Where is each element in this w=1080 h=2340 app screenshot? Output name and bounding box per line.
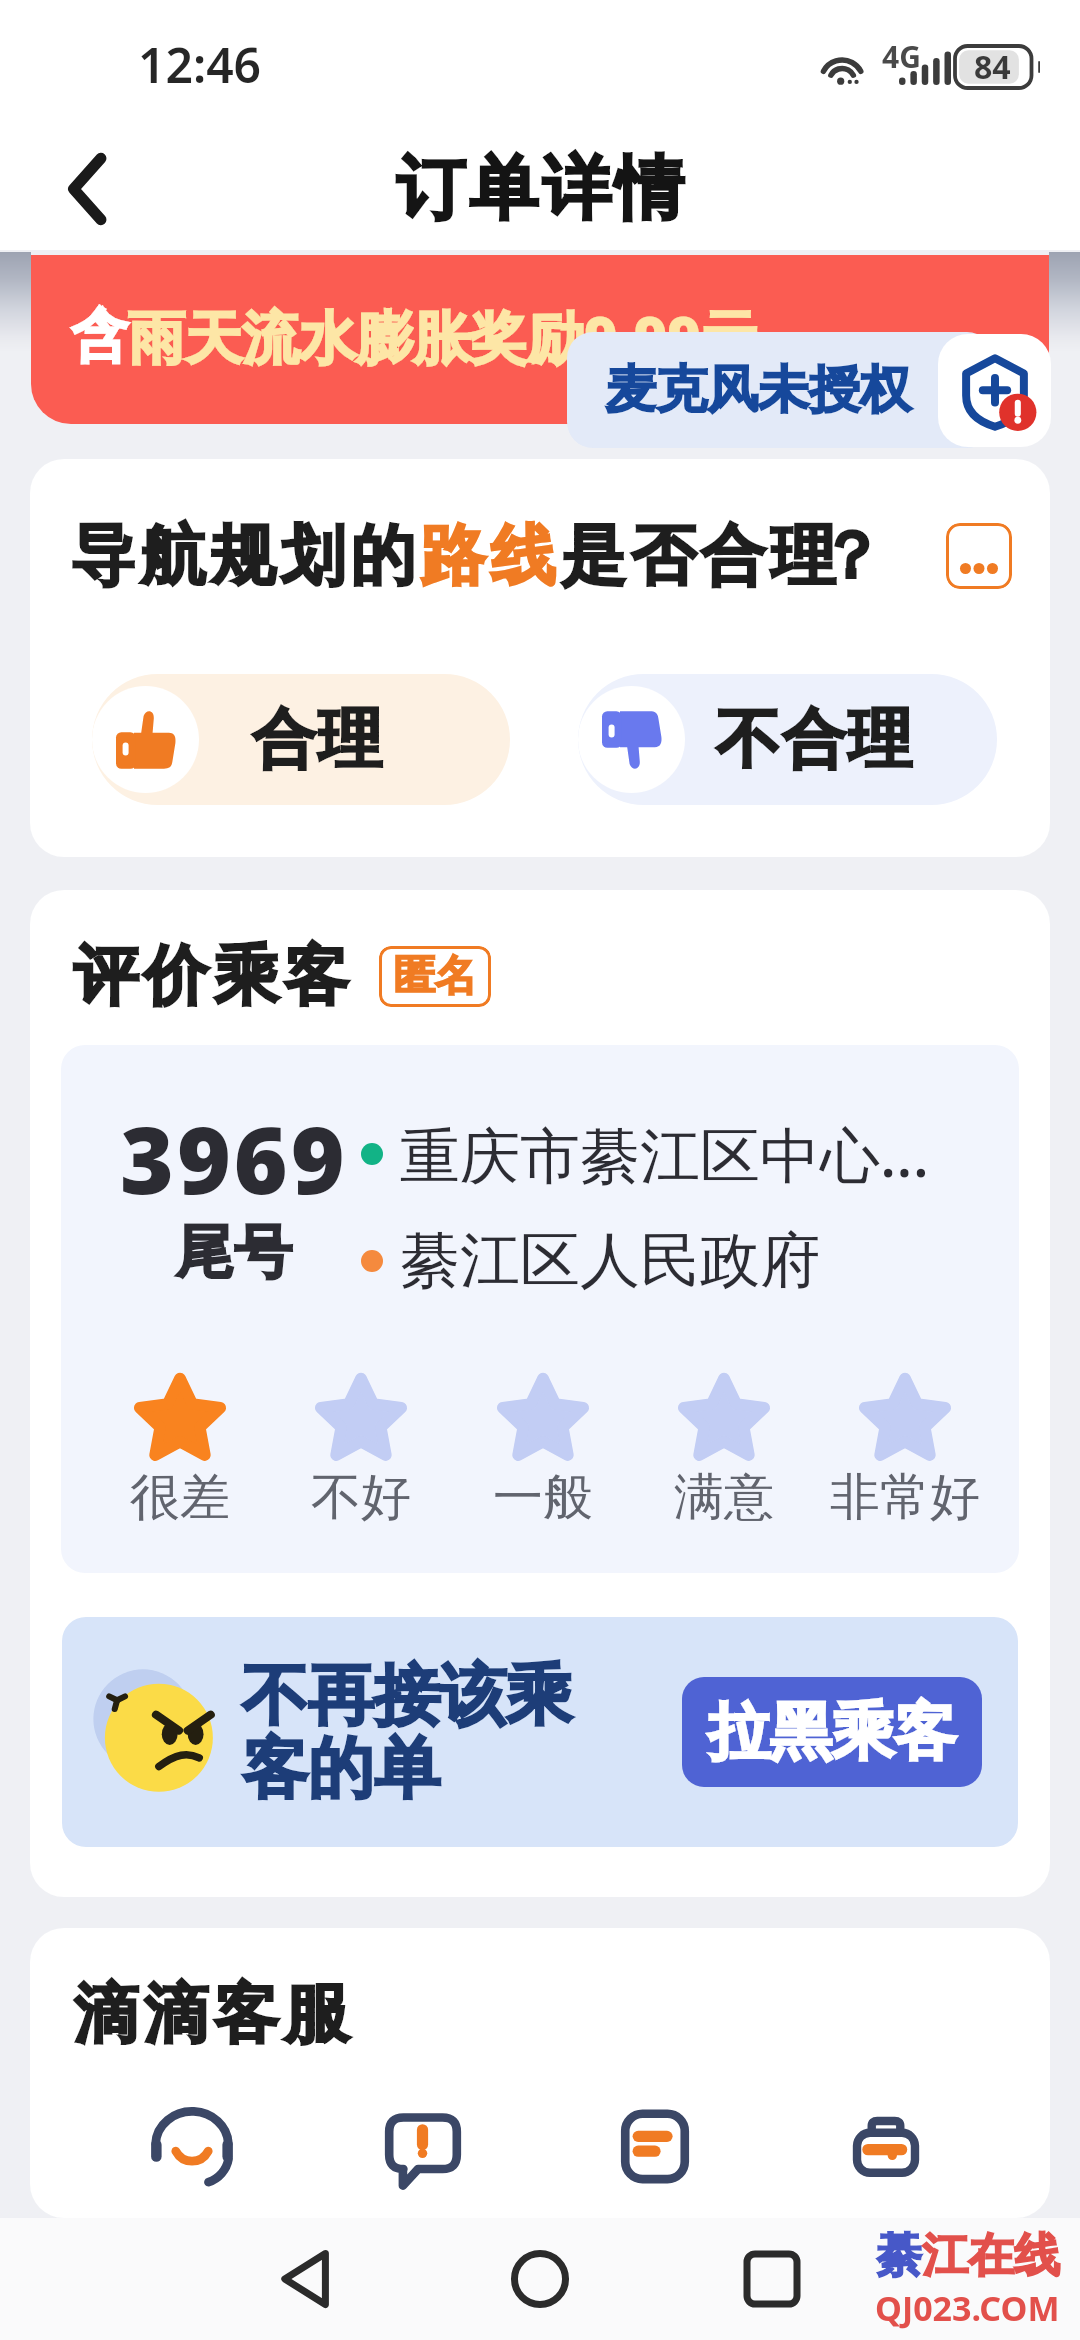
button[interactable]: Report a problem: [361, 2083, 485, 2207]
staticText: 订单详情: [394, 146, 686, 233]
staticText: 路线: [418, 515, 558, 597]
button[interactable]: Back: [260, 2231, 356, 2327]
staticText: 綦江区人民政府: [400, 1223, 820, 1299]
button[interactable]: 合理: [92, 674, 510, 805]
staticText: 滴滴客服: [71, 1973, 351, 2055]
button[interactable]: 满意: [648, 1374, 800, 1529]
staticText: 合理: [251, 699, 383, 780]
staticText: 尾号: [176, 1216, 292, 1289]
staticText: 84: [974, 45, 1011, 89]
staticText: 4G: [882, 36, 921, 77]
button[interactable]: 不好: [285, 1374, 437, 1529]
staticText: 不再接该乘客的单: [242, 1654, 580, 1811]
staticText: 不好: [311, 1466, 411, 1529]
staticText: 綦: [876, 2227, 922, 2285]
staticText: 拉黑乘客: [708, 1693, 956, 1771]
staticText: 重庆市綦江区中心...: [400, 1113, 929, 1195]
staticText: 很差: [130, 1466, 230, 1529]
staticText: 一般: [493, 1466, 593, 1529]
button[interactable]: 非常好: [829, 1374, 981, 1529]
button[interactable]: Back: [40, 141, 136, 237]
button[interactable]: Order records: [593, 2083, 717, 2207]
button[interactable]: 一般: [467, 1374, 619, 1529]
staticText: 导航规划的: [68, 515, 418, 597]
staticText: 满意: [674, 1466, 774, 1529]
staticText: 雨天流水膨胀奖励9.99元: [128, 297, 758, 375]
button[interactable]: Microphone not authorized: [567, 332, 1051, 448]
button[interactable]: Customer service: [130, 2083, 254, 2207]
staticText: 不合理: [715, 699, 913, 780]
button[interactable]: Home: [492, 2231, 588, 2327]
button[interactable]: Lost and found: [824, 2083, 948, 2207]
button[interactable]: 不合理: [578, 674, 997, 805]
button[interactable]: 含: [31, 255, 1049, 424]
button[interactable]: More options: [946, 523, 1012, 589]
button[interactable]: 拉黑乘客: [682, 1677, 982, 1787]
staticText: 是否合理: [558, 515, 838, 597]
staticText: 12:46: [138, 32, 262, 97]
staticText: 评价乘客: [71, 935, 351, 1017]
staticText: QJ023.COM: [875, 2285, 1060, 2331]
staticText: 3969: [120, 1096, 348, 1221]
button[interactable]: Recents: [724, 2231, 820, 2327]
staticText: 非常好: [830, 1466, 980, 1529]
staticText: 匿名: [393, 950, 477, 1003]
staticText: 含: [71, 300, 128, 372]
staticText: ？: [818, 515, 883, 597]
staticText: 麦克风未授权: [605, 358, 911, 422]
staticText: 江在线: [922, 2227, 1060, 2285]
button[interactable]: 很差: [104, 1374, 256, 1529]
